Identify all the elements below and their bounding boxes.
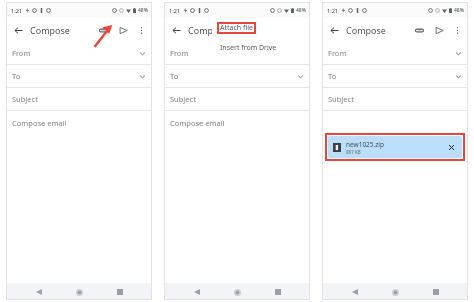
button[interactable]: Back [168, 22, 184, 38]
button[interactable]: Home [229, 284, 245, 300]
button[interactable]: To [6, 65, 152, 88]
button[interactable]: Recent apps [428, 284, 444, 300]
button[interactable]: Subject [322, 88, 468, 111]
button[interactable]: Home [387, 284, 403, 300]
button[interactable]: Back [347, 284, 363, 300]
staticText: 48% [296, 7, 306, 14]
button[interactable]: More options [449, 22, 465, 38]
staticText: Compose [346, 24, 386, 36]
staticText: Compose [188, 24, 228, 36]
button[interactable]: Compose email [6, 111, 152, 135]
button[interactable]: From [6, 42, 152, 65]
button[interactable]: Back [189, 284, 205, 300]
button[interactable]: Subject [6, 88, 152, 111]
button[interactable]: Insert from Drive [212, 38, 308, 58]
staticText: Insert from Drive [220, 43, 277, 53]
button[interactable]: Compose email [164, 111, 310, 135]
button[interactable]: To [322, 65, 468, 88]
button[interactable]: Recent apps [112, 284, 128, 300]
button[interactable]: Attach file [411, 22, 427, 38]
button[interactable]: Send [431, 22, 447, 38]
button[interactable]: More options [133, 22, 149, 38]
staticText: 48% [454, 7, 464, 14]
staticText: 887 KB [346, 149, 361, 155]
button[interactable]: Back [31, 284, 47, 300]
button[interactable]: Attach file [253, 22, 269, 38]
button[interactable]: Remove attachment [445, 141, 457, 153]
button[interactable]: From [164, 42, 310, 65]
button[interactable]: Recent apps [270, 284, 286, 300]
staticText: Subject [170, 94, 196, 104]
staticText: Subject [12, 94, 38, 104]
staticText: Compose email [170, 118, 225, 128]
button[interactable]: To [164, 65, 310, 88]
staticText: 1:21 [169, 7, 180, 14]
staticText: From [12, 48, 31, 58]
button[interactable]: Back [10, 22, 26, 38]
staticText: new1025.zip [346, 140, 385, 149]
staticText: From [328, 48, 347, 58]
button[interactable]: Home [71, 284, 87, 300]
button[interactable]: Back [326, 22, 342, 38]
staticText: 1:21 [327, 7, 338, 14]
staticText: To [12, 71, 21, 81]
button[interactable]: Send [115, 22, 131, 38]
staticText: To [170, 71, 179, 81]
staticText: Subject [328, 94, 354, 104]
button[interactable]: Subject [164, 88, 310, 111]
staticText: To [328, 71, 337, 81]
staticText: 48% [138, 7, 148, 14]
button[interactable]: Attach file [212, 18, 308, 38]
staticText: From [170, 48, 189, 58]
staticText: Compose email [12, 118, 67, 128]
button[interactable]: new1025.zip [328, 136, 462, 158]
button[interactable]: From [322, 42, 468, 65]
staticText: 1:21 [11, 7, 22, 14]
button[interactable]: Attach file [95, 22, 111, 38]
staticText: Compose [30, 24, 70, 36]
staticText: Attach file [220, 23, 253, 33]
